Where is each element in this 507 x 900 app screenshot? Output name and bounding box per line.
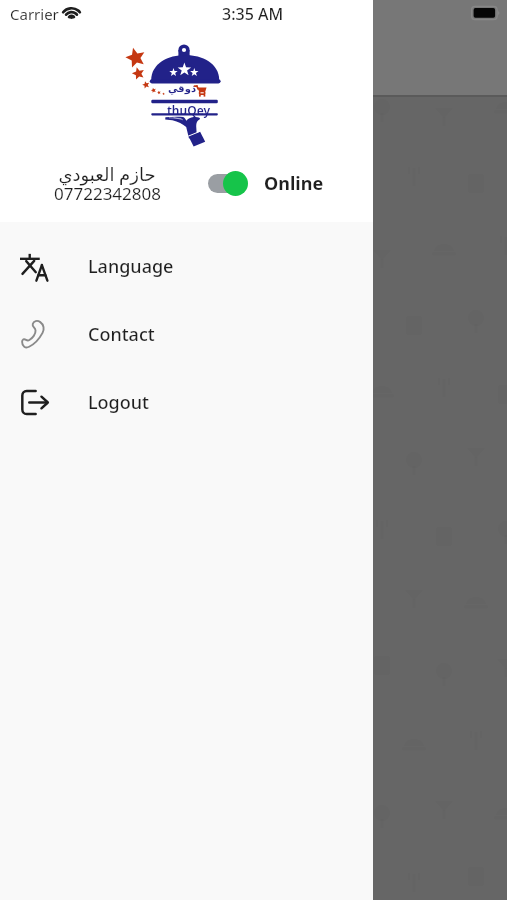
staticText: Contact: [88, 322, 155, 347]
button[interactable]: Language: [0, 232, 373, 300]
staticText: 3:35 AM: [222, 3, 284, 25]
staticText: 07722342808: [54, 182, 161, 205]
other: Logout: [20, 388, 49, 417]
staticText: thuQey: [167, 102, 210, 118]
staticText: Language: [88, 254, 174, 279]
button[interactable]: Online: [205, 170, 324, 196]
button[interactable]: Logout: [0, 368, 373, 436]
staticText: ذوقي: [168, 83, 197, 95]
staticText: Logout: [88, 390, 149, 415]
staticText: حازم العبودي: [58, 162, 156, 187]
other: Language: [20, 252, 49, 281]
button[interactable]: Contact: [0, 300, 373, 368]
other: Contact: [20, 320, 48, 348]
staticText: Carrier: [10, 4, 59, 24]
staticText: Online: [264, 171, 324, 196]
